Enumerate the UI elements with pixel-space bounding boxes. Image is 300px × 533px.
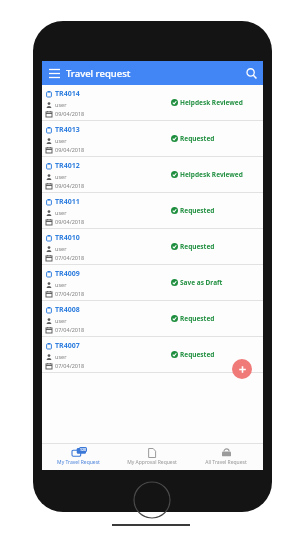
staticText: 07/04/2018: [55, 362, 85, 369]
button[interactable]: TR4012: [42, 157, 263, 193]
staticText: user: [55, 101, 67, 108]
staticText: user: [55, 209, 67, 216]
staticText: 120: [80, 447, 87, 452]
button[interactable]: TR4011: [42, 193, 263, 229]
button[interactable]: My Approval Request: [115, 443, 189, 470]
button[interactable]: TR4013: [42, 121, 263, 157]
staticText: Helpdesk Reviewed: [180, 170, 243, 179]
staticText: Requested: [180, 134, 215, 143]
staticText: 09/04/2018: [55, 110, 85, 117]
staticText: TR4009: [55, 269, 80, 279]
button[interactable]: All Travel Request: [189, 443, 263, 470]
staticText: All Travel Request: [205, 459, 247, 466]
button[interactable]: Search: [239, 61, 263, 85]
button[interactable]: 120: [42, 443, 115, 470]
button[interactable]: Add travel request: [232, 359, 252, 379]
staticText: 07/04/2018: [55, 254, 85, 261]
staticText: Helpdesk Reviewed: [180, 98, 243, 107]
button[interactable]: TR4009: [42, 265, 263, 301]
button[interactable]: TR4014: [42, 85, 263, 121]
button[interactable]: TR4008: [42, 301, 263, 337]
staticText: user: [55, 281, 67, 288]
staticText: 07/04/2018: [55, 326, 85, 333]
staticText: 09/04/2018: [55, 218, 85, 225]
staticText: Save as Draft: [180, 278, 223, 287]
staticText: TR4013: [55, 125, 80, 135]
staticText: 07/04/2018: [55, 290, 85, 297]
staticText: My Travel Request: [57, 459, 100, 466]
staticText: TR4011: [55, 197, 80, 207]
button[interactable]: TR4007: [42, 337, 263, 373]
staticText: TR4012: [55, 161, 80, 171]
staticText: 09/04/2018: [55, 146, 85, 153]
staticText: TR4014: [55, 89, 80, 99]
staticText: My Approval Request: [127, 459, 177, 466]
staticText: user: [55, 245, 67, 252]
staticText: 09/04/2018: [55, 182, 85, 189]
staticText: TR4007: [55, 341, 80, 351]
staticText: Requested: [180, 242, 215, 251]
staticText: Requested: [180, 206, 215, 215]
button[interactable]: Menu: [42, 61, 66, 85]
staticText: TR4008: [55, 305, 80, 315]
staticText: user: [55, 173, 67, 180]
staticText: Travel request: [66, 67, 131, 80]
staticText: TR4010: [55, 233, 80, 243]
button[interactable]: TR4010: [42, 229, 263, 265]
staticText: user: [55, 353, 67, 360]
staticText: Requested: [180, 314, 215, 323]
staticText: user: [55, 137, 67, 144]
staticText: Requested: [180, 350, 215, 359]
staticText: user: [55, 317, 67, 324]
